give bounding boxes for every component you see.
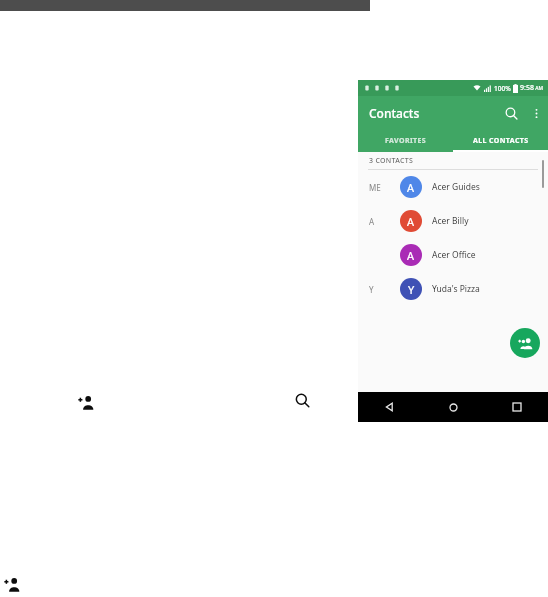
- button[interactable]: Add contact: [77, 393, 96, 412]
- button[interactable]: Home: [422, 392, 485, 422]
- button[interactable]: A: [358, 238, 548, 272]
- staticText: Y: [408, 282, 415, 297]
- button[interactable]: Recent apps: [485, 392, 548, 422]
- staticText: Acer Office: [432, 249, 476, 261]
- button[interactable]: A: [358, 204, 548, 238]
- button[interactable]: Y: [358, 272, 548, 306]
- staticText: 100%: [494, 84, 511, 93]
- button[interactable]: ALL CONTACTS: [453, 129, 548, 152]
- staticText: Yuda's Pizza: [432, 283, 480, 295]
- staticText: Y: [369, 284, 374, 295]
- staticText: ME: [369, 182, 381, 193]
- staticText: 9:58: [520, 83, 534, 93]
- staticText: Contacts: [369, 105, 420, 121]
- button[interactable]: Search: [293, 391, 312, 410]
- staticText: AM: [534, 85, 544, 92]
- staticText: A: [407, 214, 415, 229]
- staticText: A: [407, 180, 415, 195]
- button[interactable]: Add contact: [3, 575, 22, 594]
- button[interactable]: Add contact: [510, 328, 540, 358]
- staticText: Acer Guides: [432, 181, 480, 193]
- button[interactable]: Back: [358, 392, 422, 422]
- staticText: A: [407, 248, 415, 263]
- staticText: FAVORITES: [385, 136, 427, 146]
- staticText: 3 CONTACTS: [369, 156, 414, 166]
- staticText: ALL CONTACTS: [473, 136, 529, 146]
- button[interactable]: More options: [524, 101, 548, 125]
- staticText: Acer Billy: [432, 215, 469, 227]
- button[interactable]: ME: [358, 170, 548, 204]
- button[interactable]: Search: [498, 100, 524, 126]
- staticText: A: [369, 216, 375, 227]
- button[interactable]: FAVORITES: [358, 129, 453, 152]
